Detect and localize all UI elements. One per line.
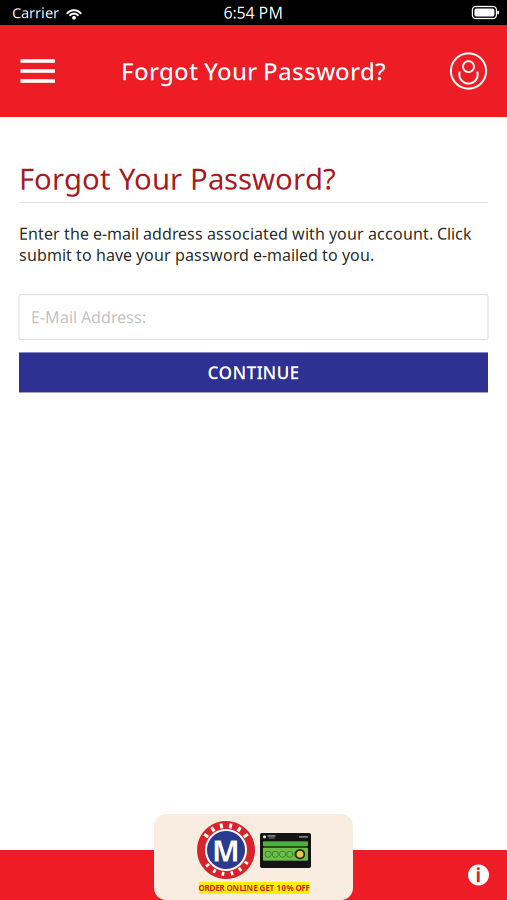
staticText: E-Mail Address: (31, 306, 146, 327)
button[interactable]: Ad information (454, 850, 507, 899)
staticText: CONTINUE (207, 361, 299, 384)
button[interactable]: E-Mail Address (19, 294, 488, 339)
staticText: 6:54 PM (223, 2, 283, 23)
button[interactable]: Menu (0, 25, 73, 117)
staticText: Forgot Your Password? (19, 159, 336, 198)
staticText: i (475, 863, 481, 887)
staticText: ORDER ONLINE GET 10% OFF (198, 883, 309, 893)
staticText: Forgot Your Password? (121, 55, 386, 87)
button[interactable]: CONTINUE (19, 352, 488, 392)
button[interactable]: Account (430, 25, 507, 117)
button[interactable]: Advertisement: Martham Kebab & Pizza — o… (154, 814, 353, 900)
staticText: M (212, 830, 240, 869)
staticText: Carrier (12, 3, 59, 22)
staticText: Enter the e-mail address associated with… (19, 223, 472, 265)
